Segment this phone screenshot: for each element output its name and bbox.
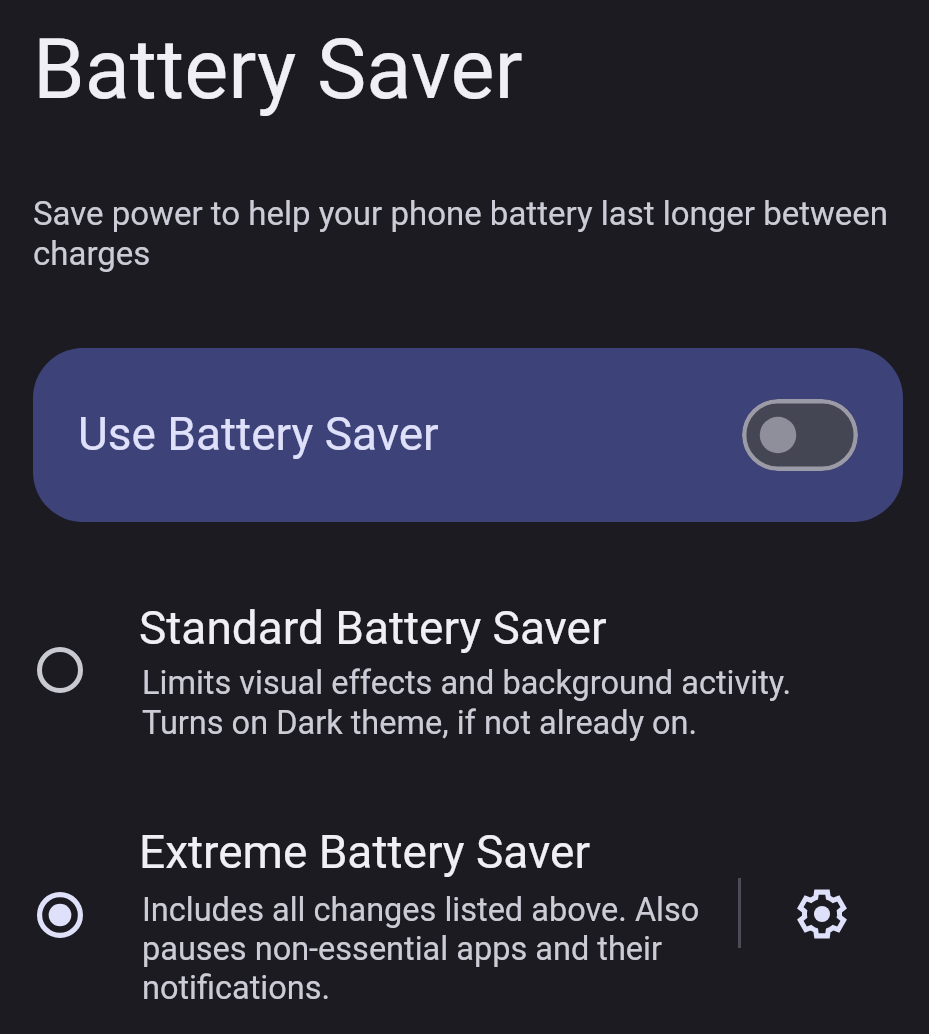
staticText: Use Battery Saver bbox=[78, 407, 439, 461]
staticText: Standard Battery Saver bbox=[139, 601, 607, 655]
button[interactable]: Extreme Battery Saver settings bbox=[786, 878, 858, 950]
button[interactable]: Standard Battery Saver bbox=[0, 580, 929, 775]
button[interactable]: Use Battery Saver bbox=[33, 348, 903, 522]
staticText: Extreme Battery Saver bbox=[139, 825, 591, 879]
staticText: Limits visual effects and background act… bbox=[142, 664, 792, 742]
button[interactable]: Extreme Battery Saver bbox=[0, 804, 929, 1031]
staticText: Includes all changes listed above. Also … bbox=[142, 891, 700, 1006]
staticText: Save power to help your phone battery la… bbox=[33, 194, 903, 273]
staticText: Battery Saver bbox=[33, 21, 523, 118]
button[interactable]: Use Battery Saver, off bbox=[742, 399, 858, 471]
